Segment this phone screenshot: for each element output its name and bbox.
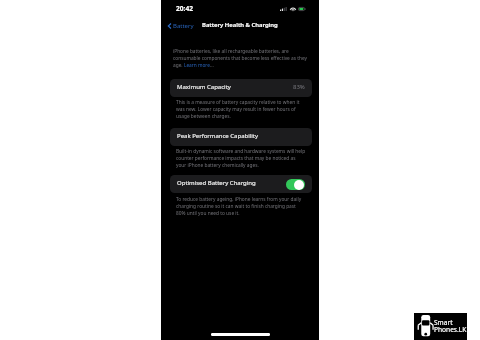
staticText: Maximum Capacity [177,83,231,91]
button[interactable]: Learn more about battery health [183,63,216,70]
button[interactable]: Optimised Battery Charging [170,175,312,193]
staticText: Battery Health & Charging [202,21,278,29]
button[interactable]: Optimised Battery Charging toggle [286,179,305,190]
staticText: Phones.LK [434,325,467,334]
staticText: Peak Performance Capability [177,132,259,140]
staticText: Optimised Battery Charging [177,179,256,187]
staticText: 83% [293,83,305,91]
staticText: To reduce battery ageing, iPhone learns … [176,196,302,217]
button[interactable]: Maximum Capacity [170,79,312,97]
staticText: iPhone batteries, like all rechargeable … [173,48,308,69]
staticText: Built-in dynamic software and hardware s… [176,148,306,169]
button[interactable]: Peak Performance Capability [170,128,312,146]
staticText: 20:42 [176,4,193,13]
staticText: Smart [434,318,453,327]
staticText: This is a measure of battery capacity re… [176,99,300,120]
staticText: Battery [173,22,194,30]
button[interactable]: Back to Battery [167,21,194,31]
